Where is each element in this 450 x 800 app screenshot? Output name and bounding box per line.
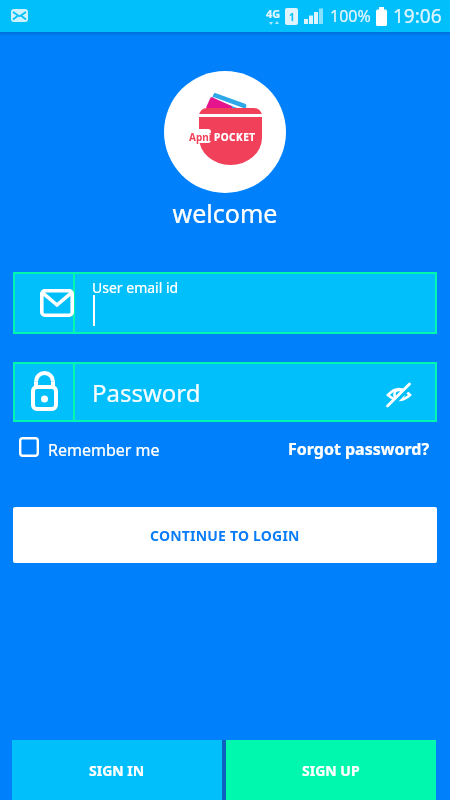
staticText: Remember me [48,439,160,461]
staticText: Apni [189,130,212,144]
staticText: Forgot password? [288,438,430,460]
staticText: SIGN IN [89,761,145,780]
staticText: 19:06 [393,3,442,29]
staticText: 1 [289,10,295,24]
staticText: POCKET [214,130,256,144]
staticText: welcome [0,196,450,230]
staticText: SIGN UP [302,761,360,780]
staticText: CONTINUE TO LOGIN [150,526,300,545]
staticText: 4G [266,6,281,21]
staticText: Password [92,376,201,409]
staticText: User email id [92,278,179,297]
staticText: 100% [330,5,371,27]
